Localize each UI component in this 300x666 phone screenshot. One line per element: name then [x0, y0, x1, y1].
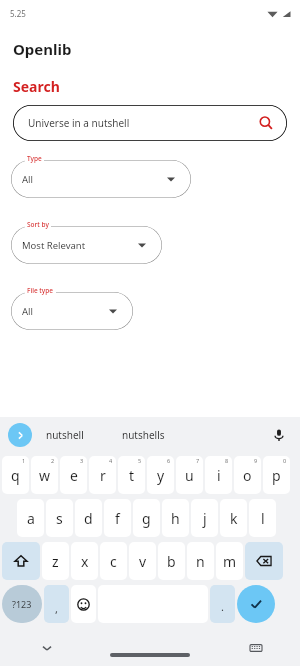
staticText: 4	[109, 457, 113, 464]
staticText: Universe in a nutshell	[28, 116, 130, 130]
staticText: File type	[27, 286, 54, 295]
button[interactable]: Backspace	[245, 542, 283, 580]
staticText: 6	[167, 457, 171, 464]
staticText: 3	[80, 457, 84, 464]
staticText: g	[142, 509, 151, 528]
staticText: Openlib	[13, 39, 72, 59]
button[interactable]: r	[89, 456, 116, 494]
button[interactable]: o	[234, 456, 261, 494]
staticText: i	[217, 466, 221, 485]
button[interactable]: f	[104, 499, 131, 537]
staticText: b	[167, 552, 176, 571]
button[interactable]: Hide keyboard	[36, 637, 58, 659]
button[interactable]: e	[60, 456, 87, 494]
button[interactable]: All	[11, 160, 191, 198]
staticText: m	[223, 552, 237, 571]
staticText: 5	[138, 457, 142, 464]
button[interactable]: t	[118, 456, 145, 494]
staticText: l	[261, 509, 265, 528]
button[interactable]: Universe in a nutshell	[13, 105, 287, 141]
button[interactable]: s	[46, 499, 73, 537]
staticText: s	[56, 509, 63, 528]
button[interactable]: i	[205, 456, 232, 494]
button[interactable]: j	[191, 499, 218, 537]
button[interactable]: k	[220, 499, 247, 537]
staticText: y	[157, 466, 165, 485]
staticText: n	[196, 552, 205, 571]
button[interactable]: Shift	[2, 542, 40, 580]
staticText: Type	[27, 154, 42, 163]
button[interactable]: All	[11, 292, 133, 330]
button[interactable]: v	[129, 542, 156, 580]
button[interactable]: n	[187, 542, 214, 580]
staticText: 5.25	[10, 8, 26, 19]
button[interactable]: nutshell	[46, 421, 84, 449]
button[interactable]: c	[100, 542, 127, 580]
button[interactable]: u	[176, 456, 203, 494]
staticText: r	[100, 466, 106, 485]
staticText: z	[52, 552, 59, 571]
staticText: u	[185, 466, 194, 485]
button[interactable]: nutshells	[122, 421, 165, 449]
staticText: t	[129, 466, 135, 485]
button[interactable]: q	[2, 456, 29, 494]
button[interactable]: d	[75, 499, 102, 537]
staticText: a	[27, 509, 35, 528]
staticText: e	[70, 466, 78, 485]
staticText: 7	[196, 457, 200, 464]
staticText: ,	[55, 601, 58, 616]
staticText: k	[230, 509, 238, 528]
button[interactable]: Enter	[237, 585, 275, 623]
staticText: 9	[254, 457, 258, 464]
staticText: f	[115, 509, 120, 528]
other: Search	[258, 115, 274, 131]
staticText: 8	[225, 457, 229, 464]
button[interactable]: More suggestions	[8, 423, 32, 447]
button[interactable]: ,	[44, 585, 69, 623]
button[interactable]: y	[147, 456, 174, 494]
button[interactable]: h	[162, 499, 189, 537]
button[interactable]: p	[263, 456, 290, 494]
staticText: j	[203, 509, 207, 528]
button[interactable]: Emoji	[71, 585, 96, 623]
button[interactable]: a	[17, 499, 44, 537]
staticText: All	[22, 173, 33, 186]
staticText: ?123	[12, 598, 32, 610]
staticText: v	[139, 552, 147, 571]
button[interactable]: Change keyboard	[246, 638, 266, 658]
staticText: Most Relevant	[22, 239, 86, 252]
staticText: q	[11, 466, 20, 485]
staticText: Search	[13, 77, 60, 96]
button[interactable]: z	[42, 542, 69, 580]
button[interactable]: .	[210, 585, 235, 623]
button[interactable]: w	[31, 456, 58, 494]
button[interactable]: g	[133, 499, 160, 537]
staticText: 0	[283, 457, 287, 464]
button[interactable]: Most Relevant	[11, 226, 162, 264]
staticText: c	[110, 552, 117, 571]
button[interactable]: m	[216, 542, 243, 580]
staticText: h	[171, 509, 180, 528]
staticText: d	[84, 509, 93, 528]
staticText: o	[243, 466, 252, 485]
staticText: All	[22, 305, 33, 318]
button[interactable]: ?123	[2, 585, 42, 623]
button[interactable]: l	[249, 499, 276, 537]
staticText: Sort by	[27, 220, 49, 229]
button[interactable]: Voice input	[268, 424, 290, 446]
staticText: x	[81, 552, 89, 571]
staticText: nutshell	[46, 428, 84, 442]
staticText: nutshells	[122, 428, 165, 442]
staticText: w	[39, 466, 51, 485]
button[interactable]: x	[71, 542, 98, 580]
staticText: .	[221, 599, 224, 614]
staticText: p	[272, 466, 281, 485]
button[interactable]: b	[158, 542, 185, 580]
staticText: 1	[22, 457, 26, 464]
staticText: 2	[51, 457, 55, 464]
